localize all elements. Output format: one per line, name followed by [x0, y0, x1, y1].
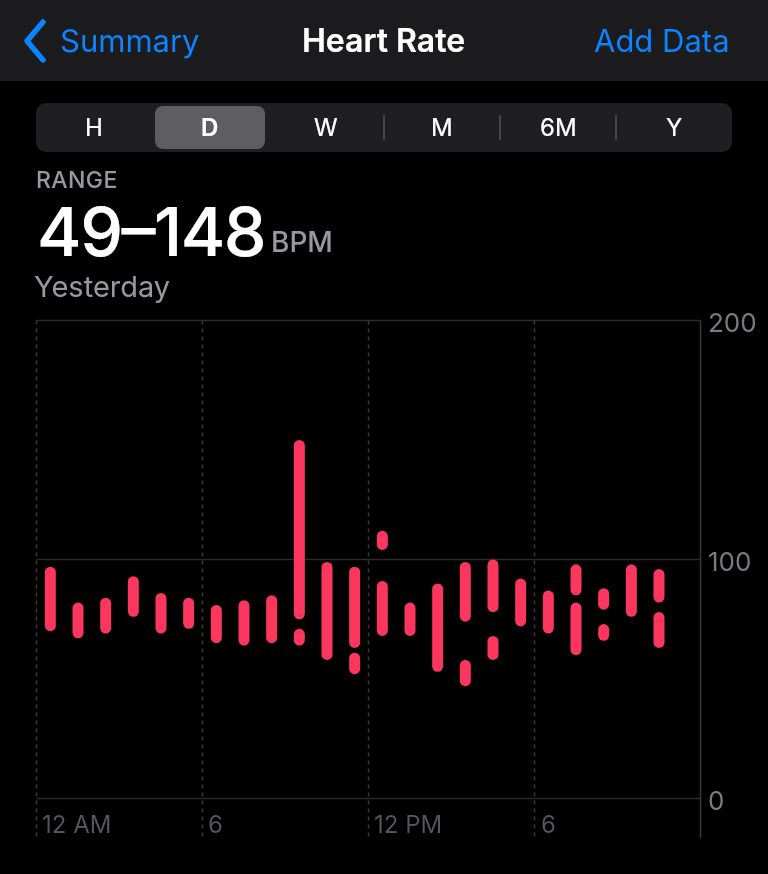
staticText: 12 AM: [42, 810, 112, 839]
staticText: Heart Rate: [302, 21, 466, 60]
staticText: RANGE: [36, 166, 118, 194]
staticText: H: [85, 113, 103, 142]
staticText: W: [314, 113, 338, 142]
staticText: 100: [708, 546, 752, 577]
staticText: 49–148: [37, 190, 266, 272]
staticText: Add Data: [594, 22, 730, 60]
staticText: 0: [708, 785, 725, 816]
staticText: 200: [708, 307, 757, 338]
staticText: 12 PM: [374, 810, 443, 839]
staticText: M: [431, 113, 453, 142]
staticText: 6M: [540, 113, 577, 142]
staticText: 6: [208, 810, 223, 839]
staticText: D: [201, 113, 219, 142]
staticText: Yesterday: [34, 269, 171, 304]
staticText: 6: [541, 810, 556, 839]
staticText: BPM: [271, 225, 333, 259]
staticText: Y: [666, 113, 683, 142]
staticText: Summary: [60, 22, 200, 60]
